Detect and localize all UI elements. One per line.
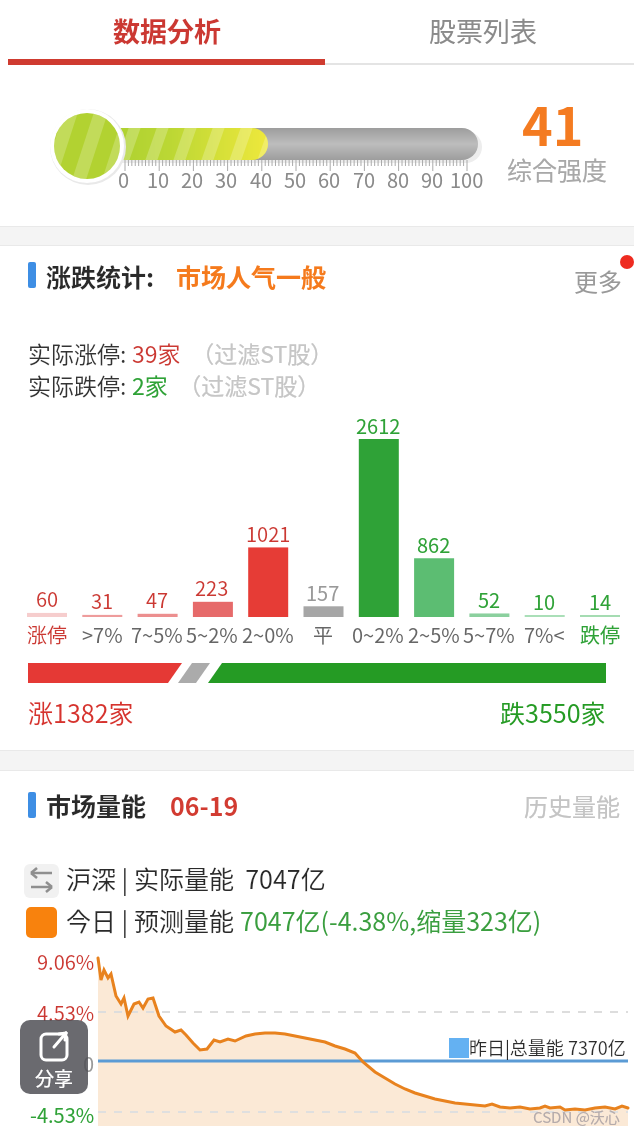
staticText: 数据分析 (113, 11, 221, 50)
staticText: 综合强度 (507, 151, 608, 187)
staticText: 90 (421, 165, 444, 194)
staticText: 4.53% (37, 998, 95, 1027)
staticText: 20 (181, 165, 204, 194)
staticText: CSDN @沃心 (533, 1106, 620, 1128)
button[interactable]: 历史量能 (480, 782, 620, 828)
button[interactable]: 更多 (546, 255, 622, 305)
staticText: 1021 (246, 519, 291, 548)
staticText: 历史量能 (524, 788, 620, 823)
staticText: 06-19 (170, 787, 239, 823)
staticText: 30 (215, 165, 238, 194)
staticText: 47 (146, 585, 169, 614)
staticText: 70 (353, 165, 376, 194)
staticText: 9.06% (37, 947, 95, 976)
staticText: 0~2% (352, 620, 404, 649)
staticText: 50 (284, 165, 307, 194)
staticText: 市场量能 (46, 787, 147, 823)
staticText: -4.53% (30, 1100, 95, 1129)
staticText: 80 (387, 165, 410, 194)
staticText: 0 (83, 1049, 95, 1078)
staticText: 157 (306, 578, 340, 607)
staticText: 2~5% (408, 620, 460, 649)
staticText: 31 (91, 586, 114, 615)
staticText: 7%< (524, 620, 565, 649)
staticText: 41 (522, 86, 584, 146)
staticText: 5~7% (463, 620, 515, 649)
staticText: 市场人气一般 (176, 258, 327, 294)
staticText: 股票列表 (429, 11, 537, 50)
staticText: 今日 | 预测量能 (66, 902, 240, 938)
staticText: 涨1382家 (28, 694, 134, 730)
staticText: 39家 (132, 336, 181, 369)
staticText: 2家 (132, 368, 168, 401)
staticText: 100 (450, 165, 484, 194)
staticText: 7~5% (131, 620, 183, 649)
staticText: 40 (250, 165, 273, 194)
staticText: 52 (478, 585, 501, 614)
staticText: （过滤ST股） (181, 336, 334, 369)
staticText: >7% (82, 620, 123, 649)
staticText: 涨停 (27, 620, 67, 649)
staticText: 10 (147, 165, 170, 194)
button[interactable] (317, 0, 634, 66)
staticText: 实际涨停: (28, 336, 132, 369)
staticText: 0 (118, 165, 130, 194)
staticText: 2~0% (242, 620, 294, 649)
staticText: 7047亿(-4.38%,缩量323亿) (240, 902, 542, 938)
staticText: （过滤ST股） (168, 368, 321, 401)
staticText: 涨跌统计: (46, 258, 155, 294)
staticText: 14 (589, 587, 612, 616)
button[interactable] (0, 0, 317, 66)
staticText: 跌3550家 (500, 694, 606, 730)
staticText: 更多 (574, 263, 622, 298)
staticText: 分享 (35, 1064, 74, 1090)
button[interactable]: 分享 (20, 1020, 88, 1094)
staticText: 跌停 (580, 620, 620, 649)
staticText: 60 (318, 165, 341, 194)
staticText: 60 (36, 584, 59, 613)
staticText: 2612 (356, 411, 401, 440)
staticText: 沪深 | 实际量能 7047亿 (66, 860, 326, 896)
staticText: 平 (313, 620, 333, 649)
staticText: 862 (417, 530, 451, 559)
staticText: 223 (195, 573, 229, 602)
staticText: 实际跌停: (28, 368, 132, 401)
staticText: 10 (533, 587, 556, 616)
staticText: 5~2% (186, 620, 238, 649)
staticText: 昨日|总量能 7370亿 (469, 1034, 626, 1060)
